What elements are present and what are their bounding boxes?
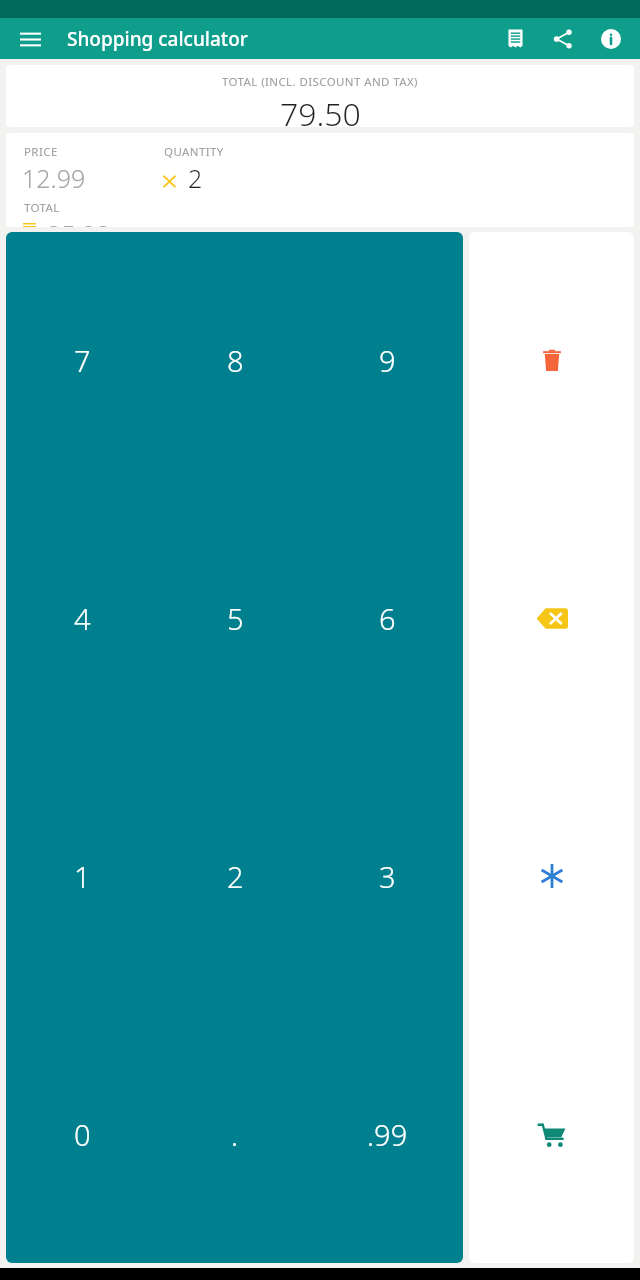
staticText: TOTAL bbox=[24, 200, 60, 216]
staticText: 5 bbox=[227, 599, 244, 638]
button[interactable]: QUANTITY bbox=[156, 144, 326, 195]
staticText: 7 bbox=[74, 341, 91, 380]
button[interactable]: PRICE bbox=[6, 144, 156, 195]
button[interactable]: Receipt bbox=[494, 18, 536, 59]
staticText: 4 bbox=[74, 599, 91, 638]
button[interactable]: TOTAL bbox=[6, 200, 634, 227]
button[interactable]: 3 bbox=[311, 747, 463, 1005]
staticText: 79.50 bbox=[280, 92, 361, 127]
button[interactable]: 6 bbox=[311, 489, 463, 747]
button[interactable]: . bbox=[159, 1005, 311, 1263]
staticText: 6 bbox=[379, 599, 396, 638]
button[interactable]: 7 bbox=[6, 232, 159, 489]
staticText: 12.99 bbox=[22, 161, 86, 195]
button[interactable]: Share bbox=[542, 18, 584, 59]
button[interactable]: 8 bbox=[159, 232, 311, 489]
button[interactable]: 5 bbox=[159, 489, 311, 747]
button[interactable]: Add to cart bbox=[469, 1005, 634, 1263]
staticText: Shopping calculator bbox=[67, 26, 248, 52]
staticText: 2 bbox=[188, 161, 203, 195]
staticText: . bbox=[231, 1115, 239, 1154]
staticText: .99 bbox=[367, 1115, 408, 1154]
button[interactable]: Discount bbox=[469, 747, 634, 1005]
button[interactable]: Info bbox=[590, 18, 632, 59]
staticText: 2 bbox=[227, 857, 244, 896]
button[interactable]: Open navigation menu bbox=[10, 19, 50, 59]
staticText: PRICE bbox=[24, 144, 58, 160]
button[interactable]: 1 bbox=[6, 747, 159, 1005]
staticText: QUANTITY bbox=[164, 144, 224, 160]
button[interactable]: 4 bbox=[6, 489, 159, 747]
button[interactable]: 9 bbox=[311, 232, 463, 489]
staticText: TOTAL (INCL. DISCOUNT AND TAX) bbox=[222, 74, 418, 90]
button[interactable]: TOTAL (INCL. DISCOUNT AND TAX) bbox=[6, 65, 634, 127]
staticText: 1 bbox=[74, 857, 91, 896]
staticText: 8 bbox=[227, 341, 244, 380]
staticText: 9 bbox=[379, 341, 396, 380]
button[interactable]: 0 bbox=[6, 1005, 159, 1263]
button[interactable]: .99 bbox=[311, 1005, 463, 1263]
button[interactable]: 2 bbox=[159, 747, 311, 1005]
button[interactable]: Clear all bbox=[469, 232, 634, 489]
staticText: 3 bbox=[379, 857, 396, 896]
staticText: 0 bbox=[74, 1115, 91, 1154]
staticText: 25.98 bbox=[47, 217, 111, 227]
button[interactable]: Backspace bbox=[469, 489, 634, 747]
